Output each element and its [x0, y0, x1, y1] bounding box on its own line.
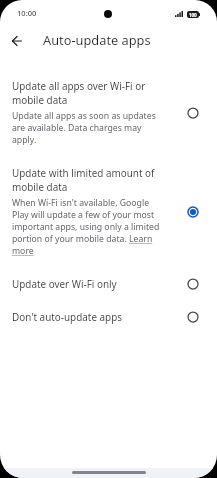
button[interactable]: Update with limited amount of mobile dat…: [0, 156, 217, 267]
staticText: Update with limited amount of mobile dat…: [12, 166, 164, 194]
staticText: When Wi-Fi isn't available, Google Play …: [12, 197, 164, 257]
button[interactable]: Update over Wi-Fi only: [0, 267, 217, 300]
staticText: 100: [189, 12, 197, 18]
staticText: Update all apps as soon as updates are a…: [12, 110, 164, 146]
staticText: Update over Wi-Fi only: [12, 277, 117, 290]
staticText: 10:00: [17, 8, 37, 18]
button[interactable]: Update all apps over Wi-Fi or mobile dat…: [0, 69, 217, 156]
staticText: Don't auto-update apps: [12, 310, 122, 323]
staticText: Update all apps over Wi-Fi or mobile dat…: [12, 79, 164, 107]
button[interactable]: Back: [5, 29, 29, 53]
staticText: Auto-update apps: [43, 31, 151, 48]
button[interactable]: Don't auto-update apps: [0, 300, 217, 333]
